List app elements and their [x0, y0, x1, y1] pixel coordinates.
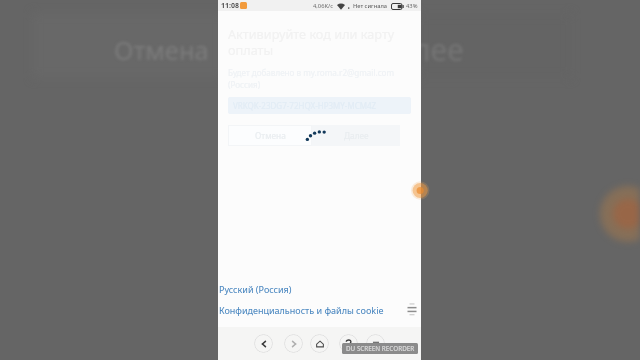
- button[interactable]: Menu: [366, 334, 385, 353]
- button[interactable]: Далее: [312, 125, 400, 146]
- button[interactable]: Scroll: [407, 302, 417, 316]
- staticText: 43%: [406, 2, 418, 10]
- button[interactable]: Forward: [284, 334, 303, 353]
- staticText: Далее: [344, 130, 369, 141]
- staticText: Отмена: [114, 33, 209, 68]
- button[interactable]: Home: [310, 334, 329, 353]
- staticText: 11:08: [221, 1, 239, 11]
- staticText: Отмена: [255, 130, 286, 141]
- button[interactable]: Bookmarks: [339, 334, 358, 353]
- button[interactable]: Конфиденциальность и файлы cookie: [219, 304, 384, 316]
- button[interactable]: Back: [254, 334, 273, 353]
- button[interactable]: VRKQK-23DG7-72HQX-HP3MY-MCM4Z: [228, 97, 411, 114]
- staticText: Будет добавлено в my.roma.r2@gmail.com (…: [228, 67, 411, 91]
- staticText: 4,06K/c: [313, 2, 334, 10]
- staticText: лее: [413, 29, 464, 70]
- button[interactable]: Русский (Россия): [219, 283, 292, 295]
- staticText: DU SCREEN RECORDER: [346, 344, 415, 353]
- button[interactable]: Отмена: [228, 125, 312, 146]
- staticText: Нет сигнала: [353, 2, 388, 10]
- button[interactable]: Assistant: [408, 180, 429, 201]
- staticText: VRKQK-23DG7-72HQX-HP3MY-MCM4Z: [233, 100, 377, 111]
